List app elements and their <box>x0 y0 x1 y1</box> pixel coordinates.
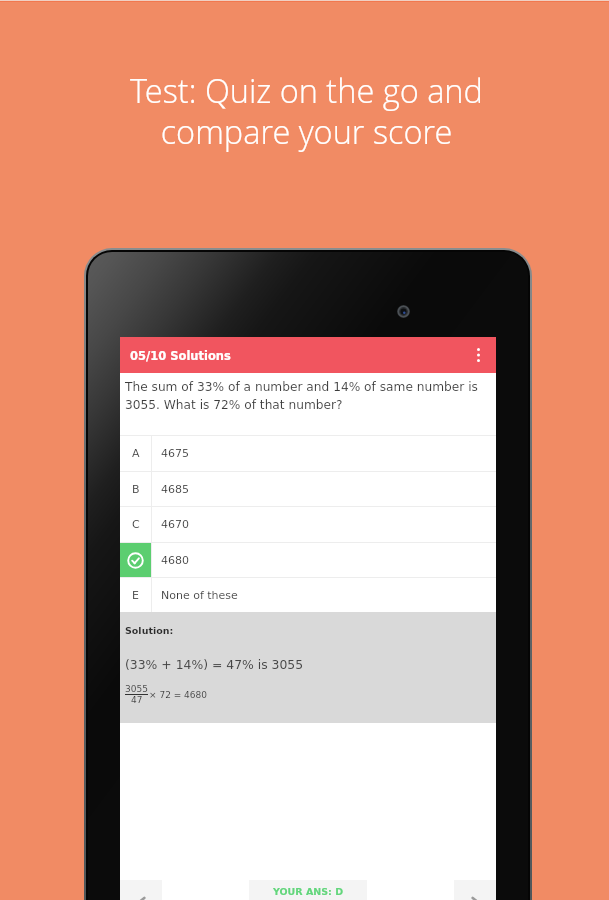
staticText: None of these <box>161 589 238 602</box>
staticText: The sum of 33% of a number and 14% of sa… <box>125 380 486 411</box>
staticText: Test: Quiz on the go and compare your sc… <box>130 68 483 154</box>
button[interactable]: E <box>120 578 496 612</box>
button[interactable]: 05/10 Solutions <box>120 337 496 373</box>
staticText: (33% + 14%) = 47% is 3055 <box>125 657 304 671</box>
staticText: 3055 <box>125 684 148 694</box>
staticText: B <box>132 483 140 496</box>
staticText: YOUR ANS: D <box>273 886 344 897</box>
staticText: 4680 <box>161 554 189 567</box>
staticText: A <box>132 447 140 460</box>
button[interactable]: C <box>120 507 496 542</box>
staticText: × 72 = 4680 <box>149 690 208 700</box>
staticText: 4670 <box>161 518 189 531</box>
staticText: 47 <box>131 695 143 705</box>
button[interactable]: 4680 <box>120 543 496 577</box>
button[interactable]: YOUR ANS: D <box>249 880 367 900</box>
staticText: E <box>132 589 139 602</box>
button[interactable]: More options <box>466 343 490 367</box>
staticText: C <box>132 518 140 531</box>
button[interactable]: Previous <box>120 880 162 900</box>
button[interactable]: B <box>120 472 496 506</box>
staticText: 4675 <box>161 447 189 460</box>
staticText: 4685 <box>161 483 189 496</box>
button[interactable]: Next <box>454 880 496 900</box>
staticText: Solution: <box>125 625 174 636</box>
button[interactable]: A <box>120 436 496 471</box>
staticText: 05/10 Solutions <box>130 349 231 362</box>
